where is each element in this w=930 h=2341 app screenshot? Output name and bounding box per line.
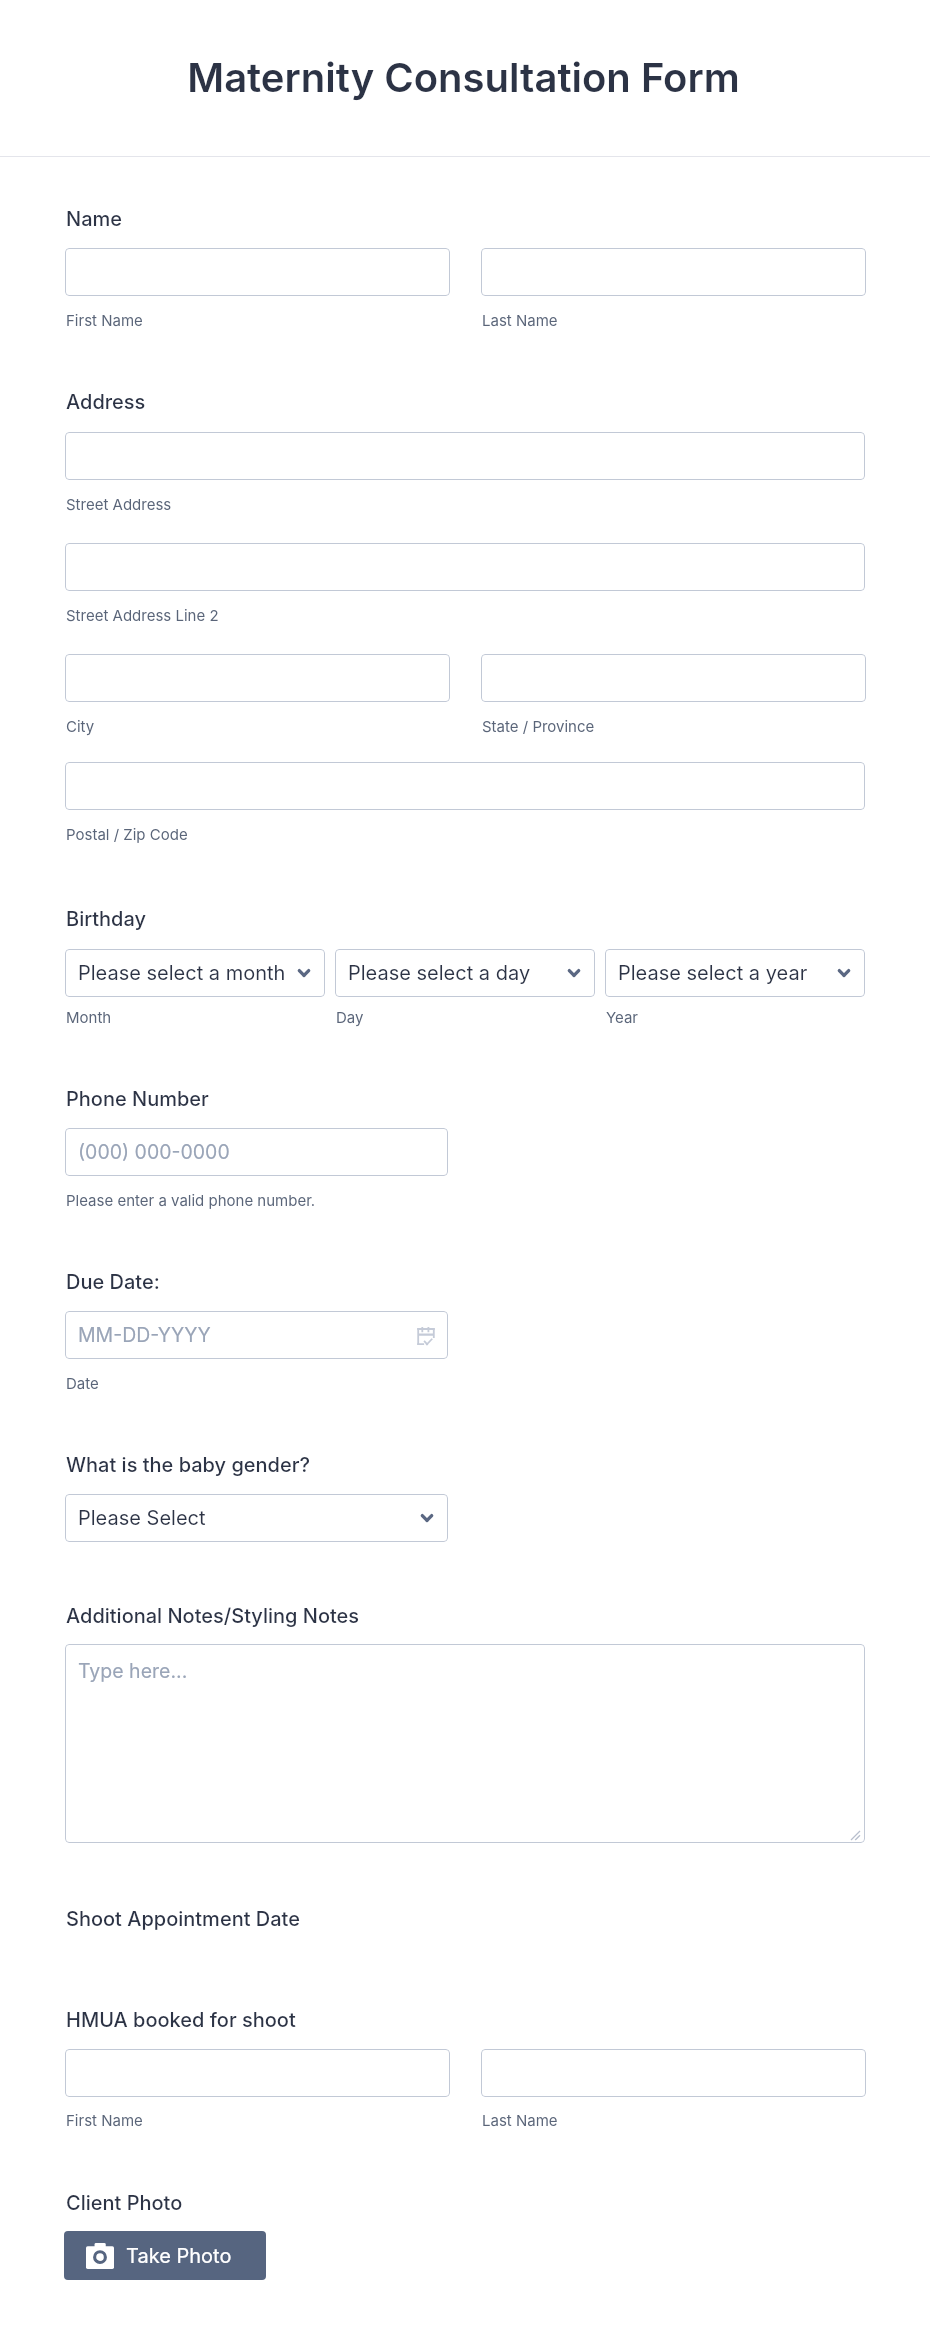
button[interactable]: HMUA First Name	[65, 2049, 450, 2097]
staticText: HMUA booked for shoot	[66, 2008, 296, 2032]
button[interactable]: Postal / Zip Code	[65, 762, 865, 810]
staticText: Birthday	[66, 907, 147, 931]
staticText: Year	[606, 1008, 638, 1026]
staticText: Street Address Line 2	[66, 606, 219, 624]
staticText: Name	[66, 207, 122, 231]
button[interactable]: Take Photo	[64, 2231, 266, 2280]
staticText: Month	[66, 1008, 112, 1026]
staticText: Please enter a valid phone number.	[66, 1191, 316, 1209]
staticText: Take Photo	[126, 2244, 232, 2268]
staticText: Due Date:	[66, 1270, 160, 1294]
staticText: First Name	[66, 311, 143, 329]
button[interactable]: Last Name	[481, 248, 866, 296]
staticText: Maternity Consultation Form	[187, 53, 740, 101]
button[interactable]: Please Select	[65, 1494, 448, 1542]
button[interactable]: State / Province	[481, 654, 866, 702]
staticText: Additional Notes/Styling Notes	[66, 1604, 360, 1628]
button[interactable]: Please select a year	[605, 949, 865, 997]
button[interactable]: Please select a day	[335, 949, 595, 997]
staticText: Day	[336, 1008, 364, 1026]
button[interactable]: First Name	[65, 248, 450, 296]
staticText: Type here...	[78, 1659, 188, 1683]
staticText: Shoot Appointment Date	[66, 1907, 300, 1931]
staticText: Street Address	[66, 495, 172, 513]
button[interactable]: HMUA Last Name	[481, 2049, 866, 2097]
staticText: Date	[66, 1374, 99, 1392]
staticText: Please select a day	[348, 961, 531, 985]
button[interactable]: Phone Number	[65, 1128, 448, 1176]
staticText: Last Name	[482, 2111, 558, 2129]
button[interactable]: Due Date	[65, 1311, 448, 1359]
staticText: Postal / Zip Code	[66, 825, 188, 843]
button[interactable]: Additional Notes	[65, 1644, 865, 1843]
staticText: Last Name	[482, 311, 558, 329]
staticText: Phone Number	[66, 1087, 209, 1111]
button[interactable]: Street Address Line 2	[65, 543, 865, 591]
button[interactable]: City	[65, 654, 450, 702]
staticText: Please select a year	[618, 961, 808, 985]
button[interactable]: Street Address	[65, 432, 865, 480]
staticText: Please select a month	[78, 961, 286, 985]
staticText: City	[66, 717, 95, 735]
button[interactable]: Please select a month	[65, 949, 325, 997]
staticText: State / Province	[482, 717, 595, 735]
staticText: (000) 000-0000	[78, 1140, 230, 1164]
staticText: What is the baby gender?	[66, 1453, 310, 1477]
staticText: First Name	[66, 2111, 143, 2129]
staticText: MM-DD-YYYY	[78, 1323, 211, 1347]
staticText: Address	[66, 390, 146, 414]
staticText: Please Select	[78, 1506, 206, 1530]
staticText: Client Photo	[66, 2191, 183, 2215]
